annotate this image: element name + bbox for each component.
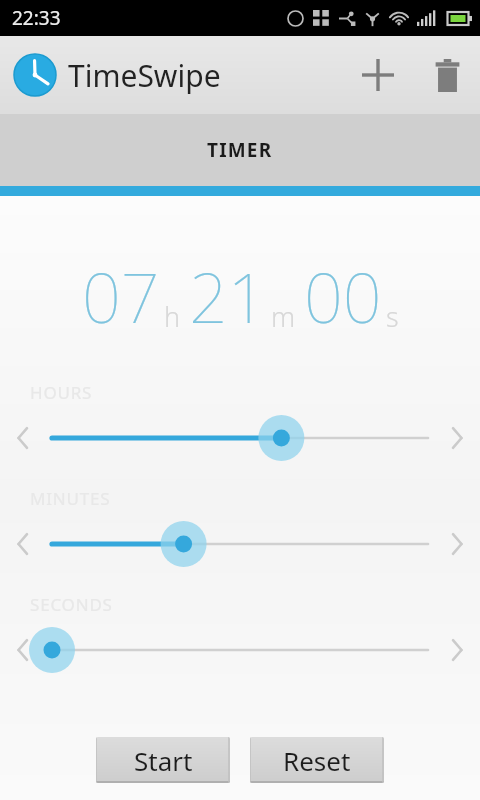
staticText: SECONDS: [30, 593, 113, 616]
button[interactable]: Decrease SECONDS: [0, 627, 46, 673]
button[interactable]: SECONDS slider: [46, 624, 434, 676]
button[interactable]: Reset: [250, 737, 384, 783]
staticText: 22:33: [12, 5, 61, 31]
staticText: Start: [134, 743, 193, 778]
staticText: TimeSwipe: [68, 55, 221, 96]
button[interactable]: Delete timer: [414, 36, 480, 114]
staticText: HOURS: [30, 381, 93, 404]
staticText: s: [386, 298, 399, 335]
button[interactable]: HOURS slider: [46, 412, 434, 464]
staticText: MINUTES: [30, 487, 111, 510]
staticText: 00: [304, 250, 382, 343]
button[interactable]: TimeSwipe: [14, 54, 221, 96]
staticText: Reset: [283, 743, 351, 778]
button[interactable]: Increase MINUTES: [434, 521, 480, 567]
button[interactable]: Start: [96, 737, 230, 783]
staticText: m: [271, 298, 296, 335]
button[interactable]: Increase HOURS: [434, 415, 480, 461]
staticText: h: [164, 298, 181, 335]
button[interactable]: Increase SECONDS: [434, 627, 480, 673]
staticText: TIMER: [207, 137, 273, 163]
staticText: 21: [189, 250, 267, 343]
button[interactable]: TIMER: [0, 114, 480, 186]
staticText: 07: [82, 250, 160, 343]
button[interactable]: Decrease HOURS: [0, 415, 46, 461]
button[interactable]: MINUTES slider: [46, 518, 434, 570]
button[interactable]: Add timer: [342, 36, 414, 114]
button[interactable]: Decrease MINUTES: [0, 521, 46, 567]
